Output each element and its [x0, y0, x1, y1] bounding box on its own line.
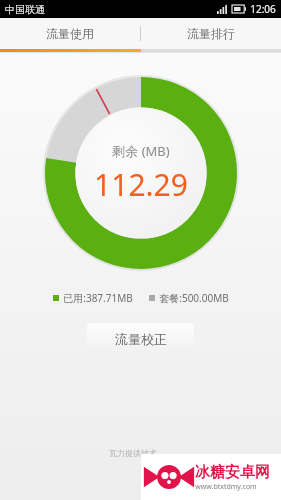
button[interactable]: 流量排行 — [140, 18, 281, 49]
staticText: 中国联通 — [5, 3, 45, 16]
staticText: 12:06 — [250, 2, 276, 16]
staticText: www.btxtdmy.com — [195, 482, 257, 492]
staticText: 流量排行 — [187, 26, 235, 41]
staticText: 流量使用 — [46, 26, 94, 41]
button[interactable]: 流量使用 — [0, 18, 140, 49]
staticText: 已用:387.71MB — [63, 291, 133, 305]
staticText: 套餐:500.00MB — [159, 291, 229, 305]
staticText: 冰糖安卓网 — [195, 463, 270, 482]
button[interactable]: 流量校正 — [87, 323, 194, 355]
staticText: 瓦力提供技术 — [109, 448, 157, 458]
staticText: 112.29 — [94, 164, 188, 205]
staticText: 剩余 (MB) — [112, 142, 170, 160]
staticText: 流量校正 — [115, 331, 167, 347]
